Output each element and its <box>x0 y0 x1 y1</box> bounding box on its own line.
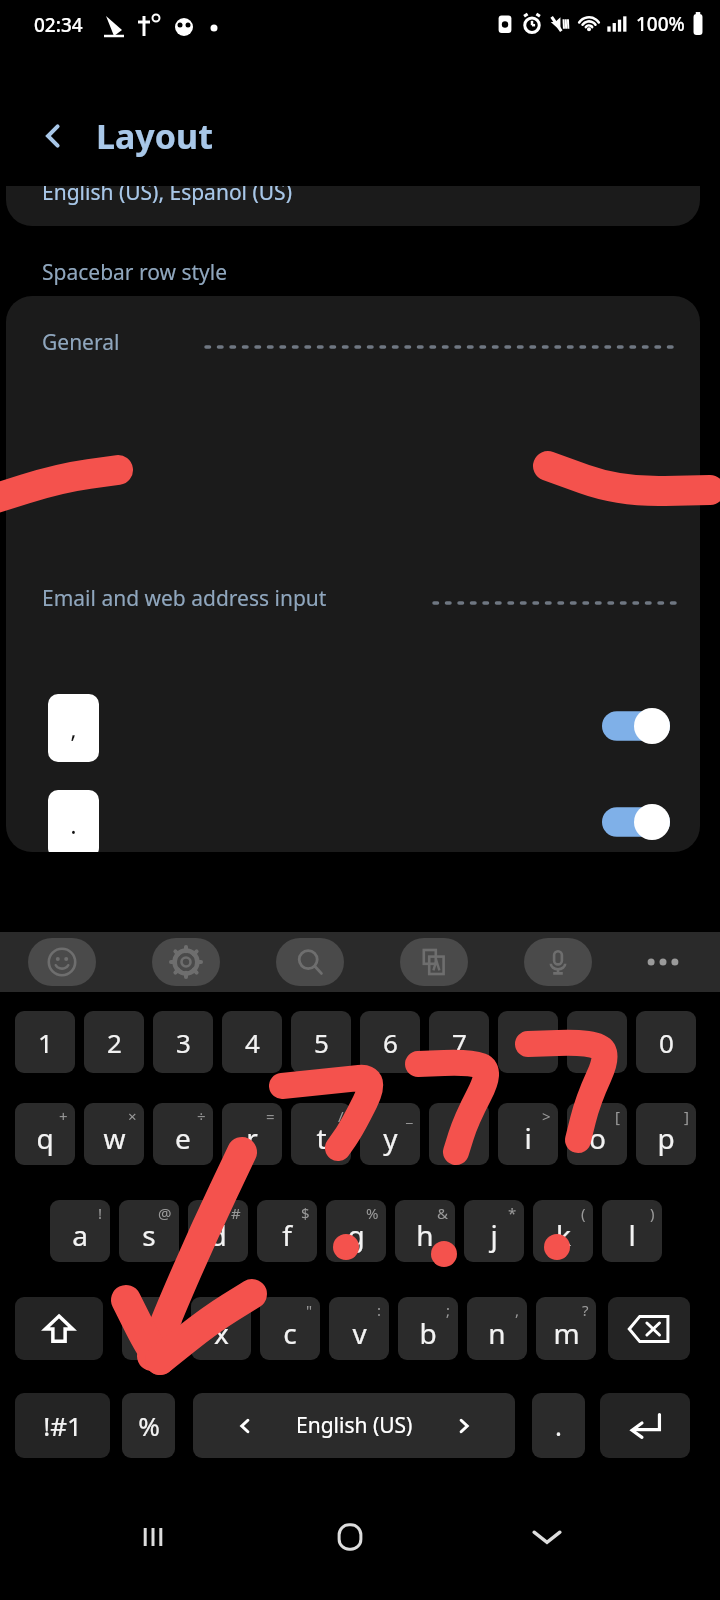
button[interactable]: $ <box>257 1200 317 1262</box>
staticText: w <box>103 1119 126 1157</box>
button[interactable]: Shift <box>15 1297 103 1360</box>
staticText: u <box>450 1119 468 1157</box>
button[interactable]: , <box>48 694 99 762</box>
staticText: 4 <box>245 1025 260 1060</box>
button[interactable]: Settings <box>152 938 220 986</box>
staticText: g <box>347 1216 365 1254</box>
button[interactable]: ( <box>533 1200 593 1262</box>
button[interactable]: * <box>464 1200 524 1262</box>
button[interactable]: Enter <box>600 1393 690 1458</box>
staticText: : <box>377 1300 382 1320</box>
staticText: k <box>556 1216 571 1254</box>
button[interactable]: Toggle <box>602 708 670 744</box>
button[interactable]: Home <box>315 1502 385 1572</box>
staticText: q <box>36 1119 54 1157</box>
button[interactable]: < <box>429 1103 489 1165</box>
staticText: $ <box>301 1203 310 1223</box>
button[interactable]: Voice input <box>524 938 592 986</box>
button[interactable]: Hide keyboard <box>512 1502 582 1572</box>
staticText: i <box>524 1119 532 1157</box>
staticText: f <box>282 1216 292 1254</box>
button[interactable]: % <box>122 1393 175 1458</box>
button[interactable]: More options <box>636 938 690 986</box>
button[interactable]: ; <box>398 1297 458 1360</box>
staticText: a <box>72 1216 88 1254</box>
button[interactable]: 1 <box>15 1011 75 1073</box>
button[interactable]: 6 <box>360 1011 420 1073</box>
button[interactable]: Translate <box>400 938 468 986</box>
button[interactable]: . <box>48 790 99 852</box>
staticText: l <box>628 1216 636 1254</box>
staticText: !#1 <box>43 1408 82 1443</box>
button[interactable]: Toggle <box>602 804 670 840</box>
button[interactable]: @ <box>119 1200 179 1262</box>
button[interactable]: 5 <box>291 1011 351 1073</box>
button[interactable]: 8 <box>498 1011 558 1073</box>
button[interactable]: 0 <box>636 1011 696 1073</box>
button[interactable]: _ <box>360 1103 420 1165</box>
button[interactable]: & <box>395 1200 455 1262</box>
button[interactable]: English (US) <box>193 1393 515 1458</box>
button[interactable]: . <box>532 1393 585 1458</box>
staticText: > <box>542 1106 551 1126</box>
button[interactable]: × <box>84 1103 144 1165</box>
staticText: 6 <box>383 1025 398 1060</box>
staticText: 7 <box>452 1025 467 1060</box>
staticText: / <box>338 1106 344 1126</box>
staticText: m <box>553 1314 580 1352</box>
button[interactable]: [ <box>567 1103 627 1165</box>
button[interactable]: Search <box>276 938 344 986</box>
staticText: 0 <box>659 1025 674 1060</box>
button[interactable]: ) <box>602 1200 662 1262</box>
staticText: % <box>366 1203 379 1223</box>
button[interactable]: % <box>326 1200 386 1262</box>
button[interactable]: English (US), Espanol (US) <box>6 186 700 226</box>
staticText: English (US) <box>296 1411 413 1440</box>
button[interactable]: z <box>122 1297 182 1360</box>
staticText: ! <box>98 1203 103 1223</box>
staticText: , <box>70 712 77 745</box>
staticText: & <box>437 1203 448 1223</box>
staticText: 9 <box>590 1025 605 1060</box>
staticText: c <box>283 1314 297 1352</box>
button[interactable]: = <box>222 1103 282 1165</box>
button[interactable]: + <box>15 1103 75 1165</box>
button[interactable]: ÷ <box>153 1103 213 1165</box>
button[interactable]: Recents <box>118 1502 188 1572</box>
button[interactable]: > <box>498 1103 558 1165</box>
button[interactable]: " <box>260 1297 320 1360</box>
button[interactable]: , <box>467 1297 527 1360</box>
button[interactable]: ] <box>636 1103 696 1165</box>
button[interactable]: Backspace <box>608 1297 690 1360</box>
staticText: v <box>352 1314 367 1352</box>
button[interactable]: 3 <box>153 1011 213 1073</box>
button[interactable]: 7 <box>429 1011 489 1073</box>
button[interactable]: 4 <box>222 1011 282 1073</box>
button[interactable]: / <box>291 1103 351 1165</box>
staticText: @ <box>158 1203 172 1223</box>
staticText: General <box>42 328 120 357</box>
staticText: × <box>128 1106 137 1126</box>
staticText: 2 <box>107 1025 122 1060</box>
staticText: x <box>214 1314 229 1352</box>
button[interactable]: x <box>191 1297 251 1360</box>
button[interactable]: 2 <box>84 1011 144 1073</box>
staticText: + <box>59 1106 68 1126</box>
button[interactable]: ! <box>50 1200 110 1262</box>
staticText: = <box>266 1106 275 1126</box>
staticText: ( <box>581 1203 586 1223</box>
staticText: " <box>306 1300 313 1320</box>
button[interactable]: : <box>329 1297 389 1360</box>
staticText: ÷ <box>197 1106 206 1126</box>
button[interactable]: Emoji <box>28 938 96 986</box>
staticText: b <box>419 1314 437 1352</box>
button[interactable]: 9 <box>567 1011 627 1073</box>
staticText: ) <box>650 1203 655 1223</box>
button[interactable]: !#1 <box>15 1393 110 1458</box>
button[interactable]: # <box>188 1200 248 1262</box>
staticText: [ <box>615 1106 620 1126</box>
staticText: 3 <box>176 1025 191 1060</box>
button[interactable]: ? <box>536 1297 596 1360</box>
staticText: ] <box>684 1106 689 1126</box>
button[interactable]: Back <box>30 112 78 160</box>
